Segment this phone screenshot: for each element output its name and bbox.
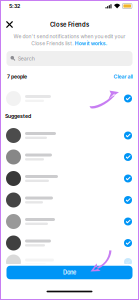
staticText: 7 people (7, 73, 27, 80)
staticText: How it works. (75, 40, 108, 46)
staticText: Close Friends list. (31, 40, 73, 46)
button[interactable] (0, 189, 139, 211)
button[interactable] (0, 211, 139, 232)
staticText: Suggested (5, 113, 31, 119)
staticText: Done (63, 269, 76, 276)
staticText: We don't send notifications when you edi… (13, 33, 125, 39)
button[interactable] (0, 146, 139, 168)
button[interactable]: Done (6, 266, 132, 279)
button[interactable] (0, 232, 139, 254)
button[interactable] (0, 251, 139, 273)
button[interactable]: Search (6, 51, 132, 66)
button[interactable] (0, 168, 139, 189)
staticText: Clear all (113, 73, 132, 80)
staticText: Search (18, 55, 35, 62)
staticText: 5:32 (9, 3, 20, 9)
button[interactable] (0, 88, 139, 109)
button[interactable]: Clear all (113, 73, 132, 80)
button[interactable]: How it works. (75, 40, 108, 46)
button[interactable] (0, 125, 139, 146)
staticText: Close Friends (50, 21, 89, 28)
button[interactable]: Close (1, 16, 17, 32)
